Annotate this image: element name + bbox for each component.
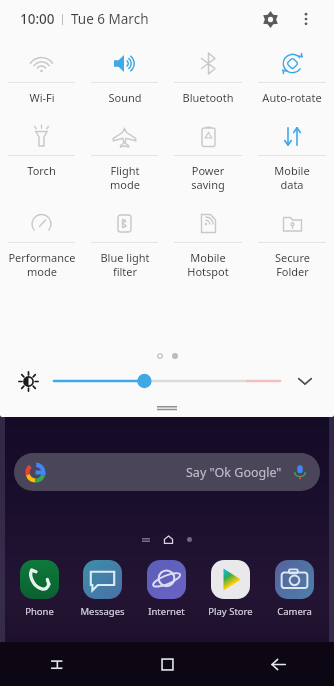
button[interactable]: Sound [83,44,166,105]
staticText: Power saving [191,163,225,192]
button[interactable]: Flight mode [83,117,166,192]
staticText: Wi-Fi [29,90,55,105]
staticText: Sound [108,90,142,105]
staticText: Mobile Hotspot [187,250,229,279]
staticText: Blue light filter [100,250,150,279]
button[interactable]: Back [223,642,334,686]
button[interactable]: Play Store [198,560,262,618]
button[interactable]: Recents [0,642,112,686]
button[interactable]: Home [112,642,223,686]
button[interactable]: Blue light filter [83,204,166,279]
button[interactable]: Internet [134,560,198,618]
button[interactable]: More options [292,5,320,33]
staticText: Tue 6 March [71,10,149,28]
staticText: Say "Ok Google" [186,464,282,481]
button[interactable]: Secure Folder [250,204,334,279]
button[interactable]: Power saving [166,117,250,192]
button[interactable]: Camera [262,560,326,618]
staticText: Torch [27,163,56,178]
button[interactable]: Auto-rotate [250,44,334,105]
staticText: Messages [80,605,125,618]
staticText: Bluetooth [182,90,234,105]
button[interactable] [54,370,280,392]
staticText: Secure Folder [275,250,310,279]
staticText: Auto-rotate [262,90,322,105]
staticText: Performance mode [8,250,76,279]
button[interactable]: Settings [256,5,284,33]
button[interactable]: Mobile data [250,117,334,192]
button[interactable]: Phone [8,560,71,618]
button[interactable]: Mobile Hotspot [166,204,250,279]
button[interactable]: Say "Ok Google" [14,453,320,491]
staticText: Play Store [208,605,253,618]
staticText: Phone [25,605,54,618]
button[interactable]: Torch [0,117,83,178]
staticText: Internet [148,605,185,618]
button[interactable]: Performance mode [0,204,83,279]
button[interactable]: Messages [71,560,134,618]
button[interactable]: Wi-Fi [0,44,83,105]
button[interactable]: Bluetooth [166,44,250,105]
staticText: Flight mode [110,163,140,192]
button[interactable]: Brightness [16,369,40,393]
staticText: Camera [277,605,312,618]
staticText: Mobile data [274,163,310,192]
button[interactable]: Expand [292,368,318,394]
staticText: 10:00 [20,10,55,28]
